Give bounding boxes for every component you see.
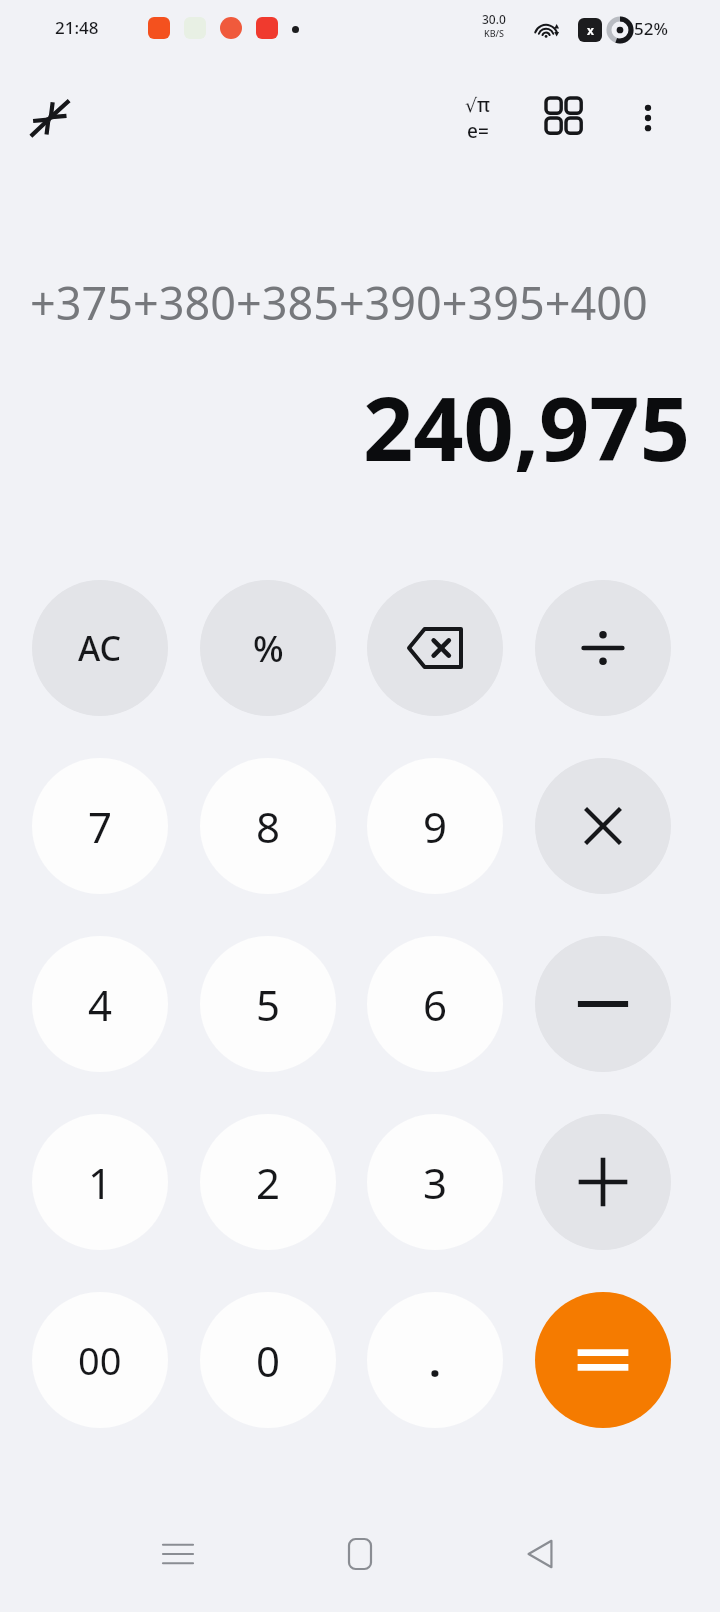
button[interactable]: Home bbox=[320, 1514, 400, 1594]
staticText: AC bbox=[78, 625, 122, 671]
staticText: 52% bbox=[634, 17, 668, 40]
staticText: 4 bbox=[88, 976, 113, 1033]
staticText: 21:48 bbox=[55, 16, 99, 39]
button[interactable]: Plus bbox=[535, 1114, 671, 1250]
button[interactable]: 3 bbox=[367, 1114, 503, 1250]
staticText: KB/S bbox=[484, 27, 504, 39]
button[interactable]: % bbox=[200, 580, 336, 716]
staticText: 8 bbox=[256, 798, 281, 855]
staticText: e= bbox=[467, 118, 489, 144]
button[interactable]: 8 bbox=[200, 758, 336, 894]
button[interactable]: 4 bbox=[32, 936, 168, 1072]
staticText: % bbox=[253, 624, 284, 673]
button[interactable]: AC bbox=[32, 580, 168, 716]
button[interactable]: Scientific mode bbox=[440, 80, 516, 156]
staticText: 7 bbox=[88, 798, 113, 855]
button[interactable]: 7 bbox=[32, 758, 168, 894]
button[interactable]: . bbox=[367, 1292, 503, 1428]
staticText: 6 bbox=[423, 976, 448, 1033]
button[interactable]: Keypad layout bbox=[528, 80, 604, 156]
button[interactable]: Equals bbox=[535, 1292, 671, 1428]
staticText: x bbox=[587, 22, 594, 38]
button[interactable]: Multiply bbox=[535, 758, 671, 894]
button[interactable]: 0 bbox=[200, 1292, 336, 1428]
button[interactable]: 5 bbox=[200, 936, 336, 1072]
staticText: 2 bbox=[256, 1154, 281, 1211]
button[interactable]: 2 bbox=[200, 1114, 336, 1250]
staticText: +375+380+385+390+395+400 bbox=[30, 272, 690, 333]
button[interactable]: 00 bbox=[32, 1292, 168, 1428]
staticText: 3 bbox=[423, 1154, 448, 1211]
staticText: . bbox=[429, 1332, 441, 1389]
staticText: 30.0 bbox=[482, 11, 506, 27]
staticText: 240,975 bbox=[30, 367, 690, 487]
button[interactable]: Recents bbox=[138, 1514, 218, 1594]
button[interactable]: 9 bbox=[367, 758, 503, 894]
staticText: 5 bbox=[256, 976, 281, 1033]
staticText: 00 bbox=[78, 1334, 122, 1386]
button[interactable]: 1 bbox=[32, 1114, 168, 1250]
button[interactable]: More options bbox=[610, 80, 686, 156]
button[interactable]: Backspace bbox=[367, 580, 503, 716]
button[interactable]: Collapse bbox=[14, 82, 86, 154]
button[interactable]: 6 bbox=[367, 936, 503, 1072]
button[interactable]: Divide bbox=[535, 580, 671, 716]
button[interactable]: Back bbox=[500, 1514, 580, 1594]
staticText: 0 bbox=[256, 1332, 281, 1389]
button[interactable]: Minus bbox=[535, 936, 671, 1072]
staticText: 1 bbox=[88, 1154, 113, 1211]
staticText: √π bbox=[465, 92, 491, 118]
staticText: 9 bbox=[423, 798, 448, 855]
